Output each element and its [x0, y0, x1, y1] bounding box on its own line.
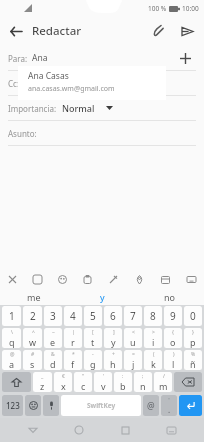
- button[interactable]: _: [33, 372, 52, 392]
- button[interactable]: 5: [84, 306, 102, 326]
- button[interactable]: no: [136, 289, 204, 305]
- button[interactable]: 6: [104, 306, 122, 326]
- staticText: @: [10, 351, 15, 358]
- button[interactable]: >: [144, 328, 162, 348]
- staticText: l: [172, 358, 175, 370]
- button[interactable]: 1: [2, 306, 21, 326]
- button[interactable]: Backspace: [174, 372, 202, 392]
- staticText: _: [41, 373, 44, 380]
- staticText: k: [151, 358, 156, 370]
- button[interactable]: Keyboard: [178, 269, 204, 289]
- button[interactable]: ^: [23, 328, 42, 348]
- button[interactable]: Sticker: [25, 269, 50, 289]
- button[interactable]: *: [64, 350, 82, 370]
- staticText: 3: [50, 309, 56, 323]
- button[interactable]: =: [124, 350, 142, 370]
- button[interactable]: 2: [23, 306, 42, 326]
- button[interactable]: 9: [164, 306, 182, 326]
- staticText: 0: [190, 309, 196, 323]
- button[interactable]: |: [64, 328, 82, 348]
- button[interactable]: 123: [2, 395, 23, 416]
- button[interactable]: Enter: [179, 395, 202, 416]
- button[interactable]: %: [184, 350, 202, 370]
- staticText: q: [9, 336, 15, 348]
- button[interactable]: ]: [104, 328, 122, 348]
- button[interactable]: me: [0, 289, 68, 305]
- staticText: ): [173, 351, 175, 358]
- button[interactable]: Add recipient: [174, 47, 196, 69]
- button[interactable]: €: [54, 372, 72, 392]
- staticText: |: [72, 329, 75, 336]
- staticText: 9: [170, 309, 176, 323]
- button[interactable]: ;: [134, 372, 152, 392]
- button[interactable]: [: [84, 328, 102, 348]
- button[interactable]: Emoji: [50, 269, 75, 289]
- staticText: -: [92, 351, 94, 358]
- button[interactable]: ~: [44, 328, 62, 348]
- staticText: +: [112, 351, 115, 358]
- staticText: m: [159, 380, 168, 392]
- button[interactable]: Recents: [112, 418, 138, 442]
- button[interactable]: &: [44, 350, 62, 370]
- button[interactable]: +: [104, 350, 122, 370]
- staticText: e: [50, 336, 56, 348]
- button[interactable]: y: [68, 289, 136, 305]
- staticText: .: [168, 404, 171, 415]
- button[interactable]: 3: [44, 306, 62, 326]
- staticText: o: [170, 336, 176, 348]
- staticText: 1: [9, 309, 15, 323]
- button[interactable]: (: [144, 350, 162, 370]
- staticText: g: [90, 358, 96, 370]
- staticText: Ana Casas: [28, 70, 69, 82]
- button[interactable]: Calendar: [152, 269, 178, 289]
- staticText: x: [61, 380, 66, 392]
- button[interactable]: Location: [126, 269, 152, 289]
- button[interactable]: 7: [124, 306, 142, 326]
- button[interactable]: Back: [0, 16, 30, 46]
- button[interactable]: /: [154, 372, 172, 392]
- button[interactable]: Voice input: [43, 395, 59, 416]
- button[interactable]: Emoji: [25, 395, 41, 416]
- staticText: p: [190, 336, 196, 348]
- button[interactable]: Close: [0, 269, 25, 289]
- button[interactable]: {: [164, 328, 182, 348]
- staticText: ~: [52, 329, 55, 336]
- staticText: v: [101, 380, 106, 392]
- button[interactable]: }: [184, 328, 202, 348]
- staticText: ñ: [190, 358, 196, 370]
- button[interactable]: @: [143, 395, 159, 416]
- staticText: %: [191, 351, 196, 358]
- button[interactable]: Change importance: [102, 101, 116, 115]
- button[interactable]: Theme: [100, 269, 126, 289]
- button[interactable]: -: [84, 350, 102, 370]
- button[interactable]: ): [164, 350, 182, 370]
- button[interactable]: Hide keyboard: [158, 418, 184, 442]
- button[interactable]: Space: [61, 395, 141, 416]
- button[interactable]: <: [124, 328, 142, 348]
- staticText: b: [120, 380, 126, 392]
- button[interactable]: Send: [174, 16, 200, 46]
- staticText: SwiftKey: [87, 401, 116, 410]
- button[interactable]: @: [2, 350, 21, 370]
- button[interactable]: Shift: [2, 372, 31, 392]
- button[interactable]: Back: [20, 418, 46, 442]
- button[interactable]: 0: [184, 306, 202, 326]
- staticText: f: [71, 358, 75, 370]
- button[interactable]: Attach: [144, 16, 174, 46]
- staticText: (: [153, 351, 155, 358]
- staticText: 4: [70, 309, 76, 323]
- button[interactable]: 4: [64, 306, 82, 326]
- button[interactable]: Home: [66, 418, 92, 442]
- button[interactable]: #: [23, 350, 42, 370]
- button[interactable]: Ana Casas: [18, 66, 166, 100]
- staticText: ": [168, 397, 171, 404]
- button[interactable]: ': [94, 372, 112, 392]
- button[interactable]: 8: [144, 306, 162, 326]
- staticText: ^: [32, 329, 35, 336]
- button[interactable]: :: [114, 372, 132, 392]
- button[interactable]: ": [74, 372, 92, 392]
- button[interactable]: ": [161, 395, 177, 416]
- button[interactable]: Clipboard: [75, 269, 100, 289]
- staticText: >: [152, 329, 155, 336]
- button[interactable]: \: [2, 328, 21, 348]
